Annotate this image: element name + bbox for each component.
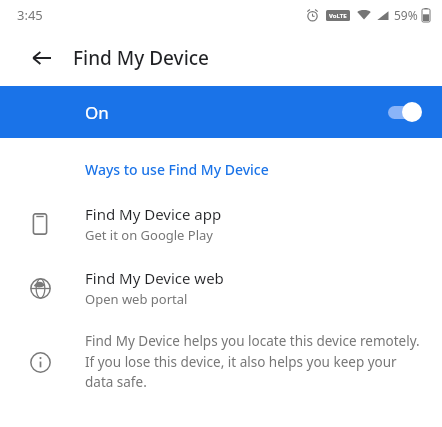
button[interactable]: Find My Device toggle, on bbox=[386, 101, 422, 123]
button[interactable]: On bbox=[0, 86, 442, 138]
staticText: Find My Device bbox=[73, 45, 210, 71]
button[interactable]: Back bbox=[20, 36, 64, 80]
staticText: 59% bbox=[394, 7, 418, 23]
staticText: 3:45 bbox=[17, 6, 43, 24]
staticText: Get it on Google Play bbox=[85, 226, 213, 244]
staticText: Find My Device helps you locate this dev… bbox=[85, 332, 424, 391]
button[interactable]: Find My Device helps you locate this dev… bbox=[0, 332, 442, 391]
staticText: VoLTE bbox=[329, 12, 347, 20]
staticText: Ways to use Find My Device bbox=[85, 160, 269, 179]
staticText: Find My Device web bbox=[85, 268, 224, 288]
staticText: Find My Device app bbox=[85, 204, 222, 224]
staticText: On bbox=[85, 101, 109, 124]
button[interactable]: Find My Device app bbox=[0, 200, 442, 248]
button[interactable]: Find My Device web bbox=[0, 264, 442, 312]
staticText: Open web portal bbox=[85, 290, 188, 308]
